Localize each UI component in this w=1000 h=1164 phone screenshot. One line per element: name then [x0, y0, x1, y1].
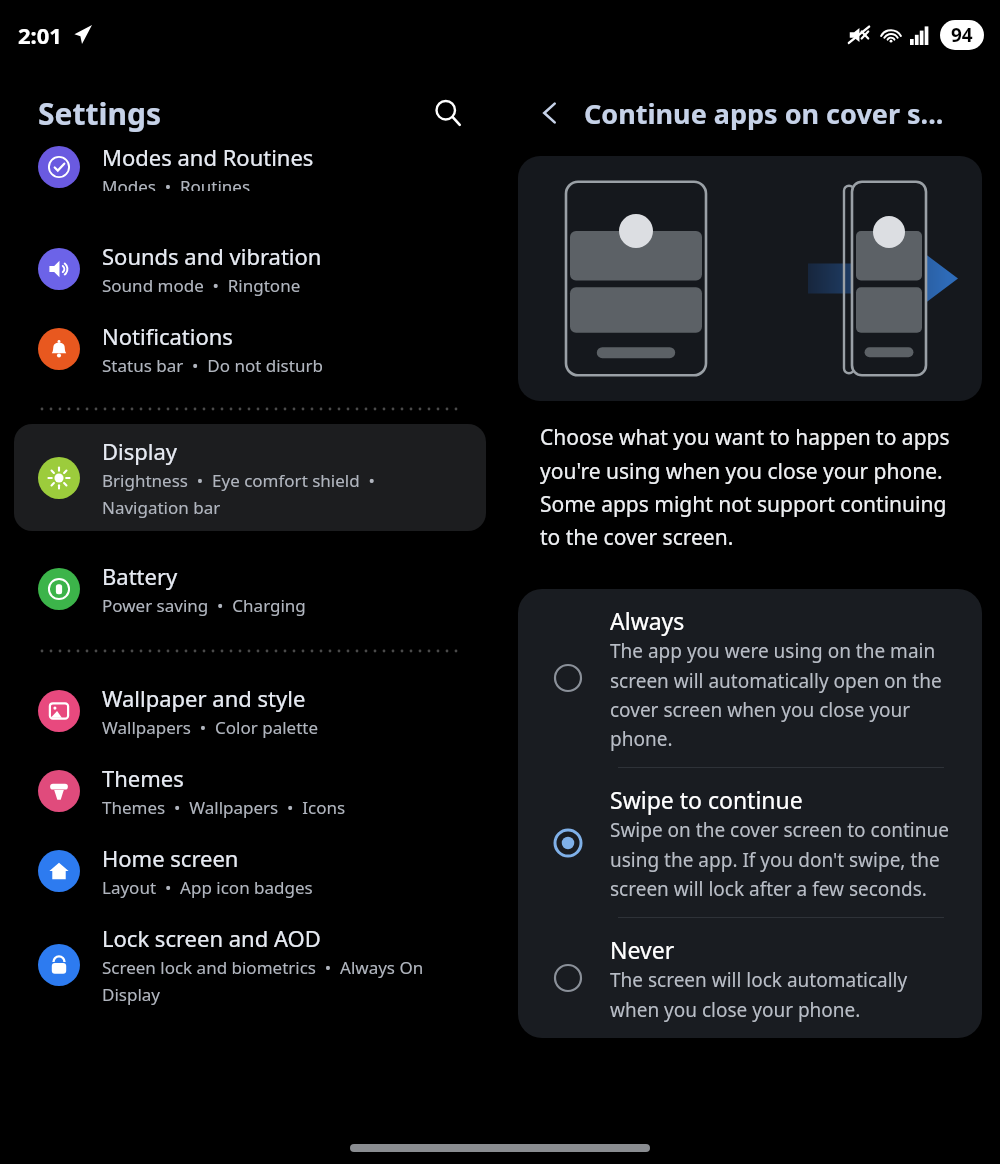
button[interactable]: Home screen: [0, 831, 500, 911]
staticText: Settings: [38, 93, 161, 134]
staticText: Wallpaper and style: [102, 683, 306, 713]
staticText: Sound mode • Ringtone: [102, 274, 301, 297]
button[interactable]: Always: [518, 589, 982, 767]
button[interactable]: Swipe to continue: [518, 768, 982, 917]
button[interactable]: Battery: [0, 531, 500, 629]
button[interactable]: Sounds and vibration: [0, 229, 500, 309]
staticText: 2:01: [18, 20, 62, 50]
staticText: Continue apps on cover s...: [584, 95, 944, 132]
staticText: Swipe on the cover screen to continue us…: [610, 817, 954, 901]
staticText: Screen lock and biometrics • Always On D…: [102, 956, 424, 1006]
staticText: Layout • App icon badges: [102, 876, 313, 899]
button[interactable]: Never: [518, 918, 982, 1038]
staticText: Never: [610, 934, 675, 965]
staticText: Wallpapers • Color palette: [102, 716, 319, 739]
staticText: Themes • Wallpapers • Icons: [102, 796, 346, 819]
button[interactable]: Back: [528, 91, 572, 135]
staticText: The screen will lock automatically when …: [610, 967, 954, 1022]
button[interactable]: Notifications: [0, 309, 500, 389]
button[interactable]: Modes and Routines: [0, 156, 500, 229]
staticText: Status bar • Do not disturb: [102, 354, 323, 377]
staticText: Brightness • Eye comfort shield • Naviga…: [102, 469, 375, 519]
staticText: 94: [951, 22, 973, 48]
staticText: Swipe to continue: [610, 784, 803, 815]
staticText: The app you were using on the main scree…: [610, 638, 954, 751]
staticText: Choose what you want to happen to apps y…: [540, 423, 962, 551]
button[interactable]: Lock screen and AOD: [0, 911, 500, 1018]
button[interactable]: Wallpaper and style: [0, 653, 500, 751]
staticText: Display: [102, 436, 178, 466]
staticText: Modes and Routines: [102, 142, 314, 172]
staticText: Always: [610, 605, 685, 636]
button[interactable]: Modes and Routines: [0, 130, 500, 203]
button[interactable]: Themes: [0, 751, 500, 831]
staticText: Power saving • Charging: [102, 594, 306, 617]
staticText: Home screen: [102, 843, 239, 873]
staticText: Modes • Routines: [102, 175, 251, 191]
button[interactable]: Search: [424, 89, 472, 137]
staticText: Sounds and vibration: [102, 241, 322, 271]
staticText: Themes: [102, 763, 184, 793]
staticText: Notifications: [102, 321, 233, 351]
staticText: Lock screen and AOD: [102, 923, 321, 953]
button[interactable]: Display: [14, 424, 486, 531]
staticText: Battery: [102, 561, 178, 591]
